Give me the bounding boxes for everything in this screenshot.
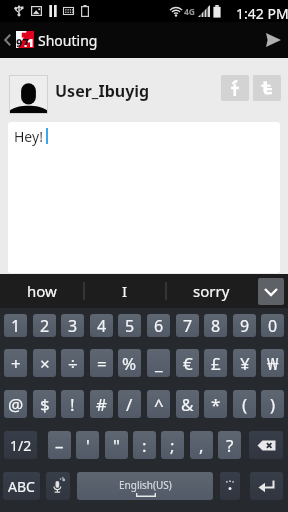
button[interactable]: Space [77, 472, 213, 500]
staticText: ¥ [240, 352, 250, 375]
button[interactable]: 7 [176, 314, 199, 337]
button[interactable]: 9 [233, 314, 256, 337]
staticText: = [97, 352, 107, 375]
staticText: 1:42 PM [236, 4, 288, 23]
button[interactable]: Send [259, 22, 288, 58]
button[interactable]: ? [218, 431, 241, 459]
staticText: 1/2 [10, 436, 32, 455]
button[interactable]: sorry [166, 274, 256, 308]
staticText: 0 [268, 315, 278, 337]
staticText: 4G [184, 6, 196, 17]
button[interactable]: 5 [118, 314, 141, 337]
button[interactable]: Voice input [46, 472, 70, 500]
staticText: 7 [183, 315, 193, 337]
button[interactable]: ' [76, 431, 99, 459]
button[interactable]: & [176, 390, 199, 418]
staticText: 9 [240, 315, 250, 337]
button[interactable]: – [48, 431, 71, 459]
staticText: 97 [16, 35, 29, 50]
staticText: User_Ibuyig [55, 80, 150, 102]
button[interactable]: , [190, 431, 213, 459]
staticText: $ [40, 393, 50, 416]
button[interactable]: 0 [261, 314, 284, 337]
staticText: 5 [125, 315, 135, 337]
button[interactable]: Hey! [8, 122, 280, 273]
button[interactable]: Enter [250, 472, 283, 500]
button[interactable]: : [133, 431, 156, 459]
button[interactable]: I [84, 274, 166, 308]
button[interactable]: 2 [33, 314, 56, 337]
staticText: ( [242, 393, 248, 416]
staticText: Hey! [14, 127, 43, 146]
button[interactable]: / [118, 390, 141, 418]
button[interactable]: Hide keyboard [258, 278, 284, 305]
staticText: 2 [40, 315, 50, 337]
button[interactable]: 3 [61, 314, 84, 337]
staticText: I [122, 281, 128, 301]
button[interactable]: 4 [90, 314, 113, 337]
button[interactable]: " [105, 431, 128, 459]
staticText: Shouting [38, 31, 98, 50]
staticText: 3 [68, 315, 78, 337]
button[interactable]: + [4, 349, 27, 377]
button[interactable]: # [90, 390, 113, 418]
staticText: _ [155, 352, 163, 375]
button[interactable]: ; [161, 431, 184, 459]
staticText: ^ [154, 393, 164, 416]
staticText: & [181, 393, 194, 416]
staticText: ABC [8, 477, 35, 496]
button[interactable]: € [176, 349, 199, 377]
staticText: ! [70, 393, 75, 416]
staticText: 4 [97, 315, 107, 337]
staticText: English(US) [119, 478, 172, 492]
staticText: * [211, 393, 221, 416]
staticText: how [27, 281, 57, 301]
staticText: " [113, 434, 120, 457]
button[interactable]: how [0, 274, 84, 308]
button[interactable]: ^ [147, 390, 170, 418]
staticText: : [142, 434, 147, 457]
staticText: £ [211, 352, 221, 375]
staticText: – [55, 434, 64, 457]
button[interactable]: Backspace [249, 431, 283, 459]
staticText: # [96, 393, 107, 416]
button[interactable]: = [90, 349, 113, 377]
button[interactable]: _ [147, 349, 170, 377]
staticText: ' [86, 434, 90, 457]
button[interactable]: Period [220, 472, 240, 500]
button[interactable]: % [118, 349, 141, 377]
button[interactable]: ) [261, 390, 284, 418]
button[interactable]: ¥ [233, 349, 256, 377]
staticText: % [122, 352, 137, 375]
staticText: € [183, 352, 193, 375]
staticText: ₩ [267, 352, 279, 375]
button[interactable]: £ [204, 349, 227, 377]
staticText: 8 [211, 315, 221, 337]
staticText: 6 [154, 315, 164, 337]
button[interactable]: 6 [147, 314, 170, 337]
button[interactable]: ₩ [261, 349, 284, 377]
button[interactable]: * [204, 390, 227, 418]
staticText: ; [170, 434, 175, 457]
staticText: @ [8, 393, 24, 416]
button[interactable]: × [33, 349, 56, 377]
staticText: ? [226, 434, 234, 457]
button[interactable]: Facebook [221, 75, 249, 101]
staticText: .1 [24, 35, 34, 50]
button[interactable]: ! [61, 390, 84, 418]
staticText: 1 [11, 315, 21, 337]
staticText: / [126, 393, 133, 416]
staticText: + [11, 352, 21, 375]
button[interactable]: 1/2 [4, 431, 37, 459]
button[interactable]: ÷ [61, 349, 84, 377]
button[interactable]: Twitter [253, 75, 281, 101]
button[interactable]: 8 [204, 314, 227, 337]
staticText: × [40, 352, 50, 375]
button[interactable]: ( [233, 390, 256, 418]
button[interactable]: @ [4, 390, 27, 418]
button[interactable]: Back [0, 22, 14, 58]
button[interactable]: $ [33, 390, 56, 418]
button[interactable]: ABC [3, 472, 40, 500]
button[interactable]: 1 [4, 314, 27, 337]
staticText: ÷ [68, 352, 78, 375]
